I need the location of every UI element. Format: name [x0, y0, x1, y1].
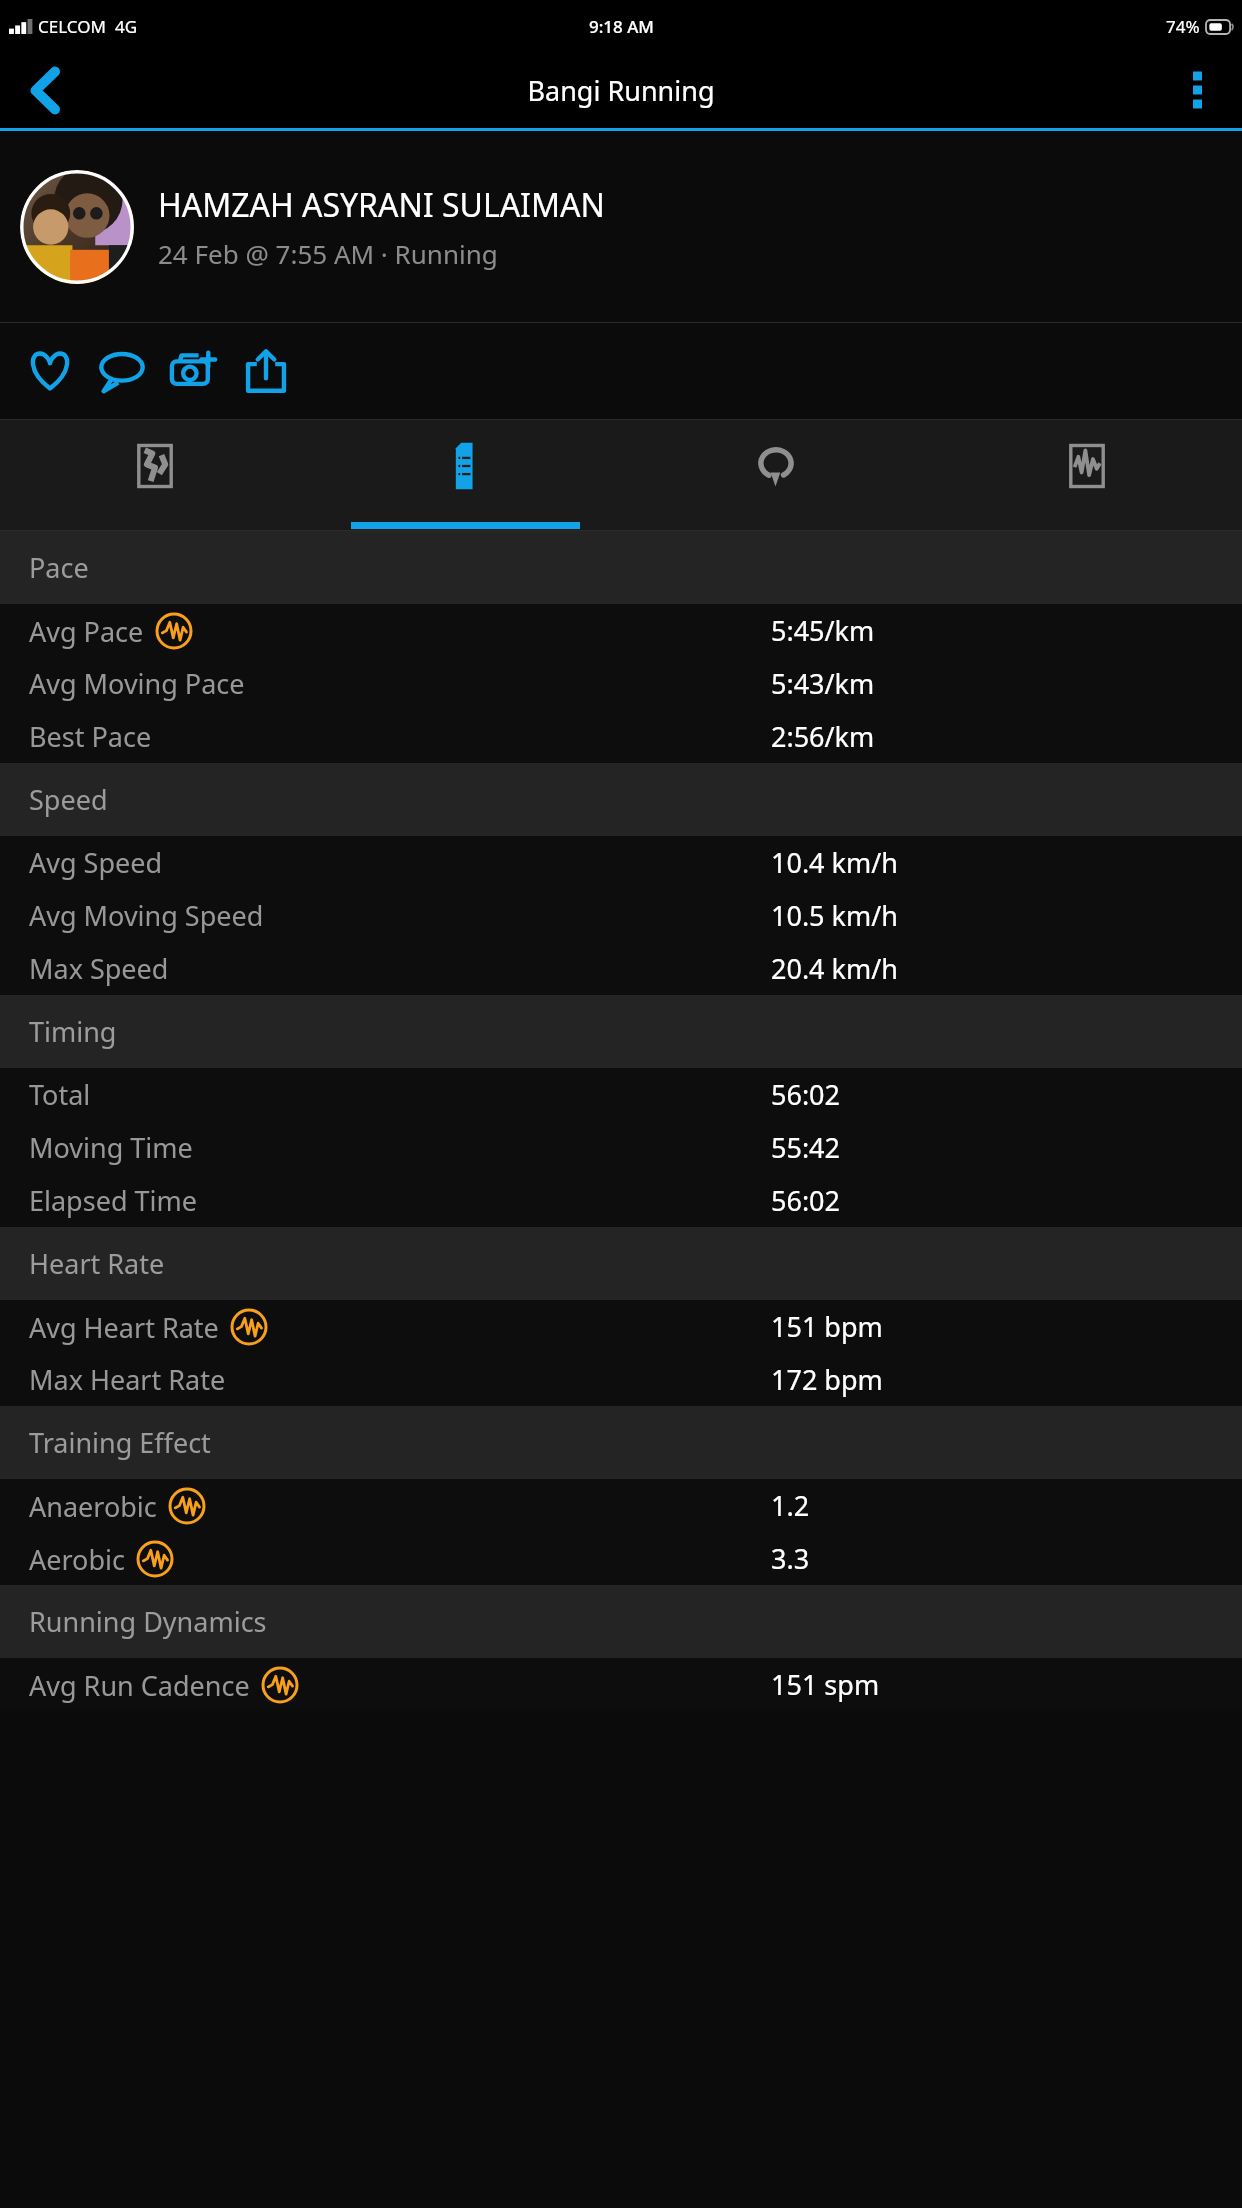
button[interactable]: Details [310, 420, 620, 530]
staticText: Max Heart Rate [29, 1361, 226, 1398]
staticText: 10.5 km/h [771, 897, 898, 934]
button[interactable]: Share [230, 335, 302, 407]
button[interactable]: Avg Pace [0, 604, 1242, 657]
staticText: 20.4 km/h [771, 950, 898, 987]
staticText: Training Effect [29, 1424, 211, 1461]
button[interactable]: Moving Time [0, 1121, 1242, 1174]
staticText: Speed [29, 781, 108, 818]
staticText: Pace [29, 549, 89, 586]
button[interactable]: Laps [620, 420, 931, 530]
staticText: Timing [29, 1013, 117, 1050]
button[interactable]: Anaerobic [0, 1479, 1242, 1532]
staticText: 1.2 [771, 1487, 810, 1524]
button[interactable]: Charts [931, 420, 1242, 530]
staticText: Max Speed [29, 950, 169, 987]
button[interactable]: Comment [86, 335, 158, 407]
button[interactable]: Avg Run Cadence [0, 1658, 1242, 1711]
staticText: 2:56/km [771, 718, 875, 755]
button[interactable]: Max Speed [0, 942, 1242, 995]
button[interactable]: Back [0, 52, 90, 128]
staticText: Aerobic [29, 1541, 125, 1578]
staticText: 9:18 AM [589, 15, 654, 38]
button[interactable]: Total [0, 1068, 1242, 1121]
staticText: Elapsed Time [29, 1182, 197, 1219]
button[interactable]: Add photo [158, 335, 230, 407]
staticText: Total [29, 1076, 91, 1113]
staticText: Avg Pace [29, 613, 144, 650]
staticText: Avg Speed [29, 844, 163, 881]
staticText: 172 bpm [771, 1361, 883, 1398]
staticText: 56:02 [771, 1182, 841, 1219]
button[interactable]: Map [0, 420, 310, 530]
staticText: 151 spm [771, 1666, 880, 1703]
staticText: 5:43/km [771, 665, 875, 702]
button[interactable]: Aerobic [0, 1532, 1242, 1585]
staticText: Avg Moving Speed [29, 897, 264, 934]
staticText: 10.4 km/h [771, 844, 898, 881]
staticText: Moving Time [29, 1129, 193, 1166]
staticText: 3.3 [771, 1540, 810, 1577]
staticText: 74% [1166, 15, 1200, 38]
button[interactable]: Avg Moving Pace [0, 657, 1242, 710]
staticText: HAMZAH ASYRANI SULAIMAN [158, 183, 605, 227]
button[interactable]: Avg Moving Speed [0, 889, 1242, 942]
staticText: 5:45/km [771, 612, 875, 649]
staticText: CELCOM [38, 15, 106, 38]
staticText: Best Pace [29, 718, 152, 755]
button[interactable]: More options [1152, 52, 1242, 128]
button[interactable]: Like [14, 335, 86, 407]
staticText: 24 Feb @ 7:55 AM · Running [158, 236, 498, 271]
button[interactable]: Avg Speed [0, 836, 1242, 889]
button[interactable]: HAMZAH ASYRANI SULAIMAN [0, 131, 1242, 322]
staticText: 56:02 [771, 1076, 841, 1113]
button[interactable]: Avg Heart Rate [0, 1300, 1242, 1353]
staticText: Running Dynamics [29, 1603, 267, 1640]
button[interactable]: Best Pace [0, 710, 1242, 763]
staticText: Heart Rate [29, 1245, 165, 1282]
staticText: 151 bpm [771, 1308, 883, 1345]
button[interactable]: Max Heart Rate [0, 1353, 1242, 1406]
button[interactable]: Elapsed Time [0, 1174, 1242, 1227]
staticText: 4G [115, 15, 138, 38]
staticText: Avg Run Cadence [29, 1667, 250, 1704]
staticText: Bangi Running [527, 72, 715, 109]
staticText: 55:42 [771, 1129, 841, 1166]
staticText: Avg Heart Rate [29, 1309, 219, 1346]
staticText: Avg Moving Pace [29, 665, 245, 702]
staticText: Anaerobic [29, 1488, 157, 1525]
